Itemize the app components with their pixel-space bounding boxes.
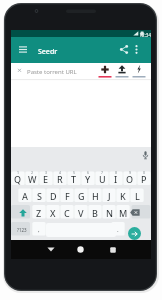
button[interactable]	[15, 42, 30, 57]
staticText: Seedr	[38, 47, 58, 57]
button[interactable]: M	[116, 205, 130, 221]
button[interactable]: P	[137, 171, 151, 187]
staticText: B	[92, 207, 98, 219]
button[interactable]	[105, 242, 120, 257]
button[interactable]: H	[88, 188, 102, 204]
staticText: X	[50, 207, 56, 219]
staticText: T	[71, 173, 77, 185]
button[interactable]: E	[39, 171, 53, 187]
button[interactable]: Z	[32, 205, 46, 221]
button[interactable]: Q	[11, 171, 25, 187]
button[interactable]	[44, 242, 58, 257]
button[interactable]	[15, 205, 31, 220]
button[interactable]: T	[67, 171, 81, 187]
staticText: H	[92, 190, 99, 202]
staticText: 7	[101, 170, 104, 175]
button[interactable]: ,	[32, 222, 46, 238]
button[interactable]: S	[32, 188, 46, 204]
button[interactable]: K	[116, 188, 130, 204]
staticText: ,	[38, 226, 40, 234]
button[interactable]: .	[111, 222, 125, 238]
staticText: L	[135, 190, 140, 202]
staticText: 12:34	[139, 32, 151, 38]
staticText: 2	[31, 170, 34, 175]
staticText: A	[22, 190, 28, 202]
staticText: 3	[45, 170, 48, 175]
staticText: 4	[59, 170, 62, 175]
button[interactable]: L	[130, 188, 144, 204]
staticText: 0	[143, 170, 146, 175]
button[interactable]: X	[46, 205, 60, 221]
button[interactable]: F	[60, 188, 74, 204]
staticText: S	[37, 190, 42, 202]
staticText: W	[28, 173, 37, 185]
button[interactable]: O	[123, 171, 137, 187]
staticText: F	[65, 190, 70, 202]
button[interactable]	[11, 63, 151, 80]
staticText: N	[106, 207, 113, 219]
button[interactable]: ?123	[13, 222, 31, 237]
staticText: .	[117, 226, 119, 234]
button[interactable]	[115, 63, 129, 79]
staticText: G	[78, 190, 85, 202]
button[interactable]	[127, 205, 143, 220]
button[interactable]: R	[53, 171, 67, 187]
button[interactable]: Y	[81, 171, 95, 187]
staticText: V	[78, 207, 84, 219]
button[interactable]: N	[102, 205, 116, 221]
staticText: J	[108, 190, 111, 202]
staticText: ?123	[17, 227, 27, 233]
button[interactable]: J	[102, 188, 116, 204]
staticText: E	[43, 173, 49, 185]
button[interactable]: I	[109, 171, 123, 187]
staticText: I	[114, 173, 118, 185]
staticText: O	[126, 173, 134, 185]
staticText: P	[141, 173, 147, 185]
button[interactable]: W	[25, 171, 39, 187]
button[interactable]: G	[74, 188, 88, 204]
staticText: Paste torrent URL	[27, 68, 77, 76]
staticText: Y	[85, 173, 91, 185]
button[interactable]	[73, 242, 88, 257]
button[interactable]	[132, 63, 146, 79]
staticText: M	[119, 207, 128, 219]
staticText: R	[57, 173, 63, 185]
staticText: 9	[129, 170, 132, 175]
button[interactable]	[118, 43, 130, 56]
staticText: 6	[87, 170, 90, 175]
button[interactable]: A	[18, 188, 32, 204]
button[interactable]	[128, 227, 141, 240]
staticText: Q	[14, 173, 22, 185]
button[interactable]: U	[95, 171, 109, 187]
staticText: C	[64, 207, 70, 219]
button[interactable]	[98, 63, 112, 79]
button[interactable]: D	[46, 188, 60, 204]
button[interactable]: V	[74, 205, 88, 221]
button[interactable]	[139, 149, 151, 161]
button[interactable]: C	[60, 205, 74, 221]
staticText: U	[99, 173, 106, 185]
staticText: D	[50, 190, 57, 202]
staticText: 8	[115, 170, 118, 175]
staticText: 1	[17, 170, 20, 175]
button[interactable]: B	[88, 205, 102, 221]
staticText: Z	[36, 207, 42, 219]
staticText: 5	[73, 170, 76, 175]
staticText: K	[120, 190, 126, 202]
button[interactable]	[130, 43, 142, 56]
